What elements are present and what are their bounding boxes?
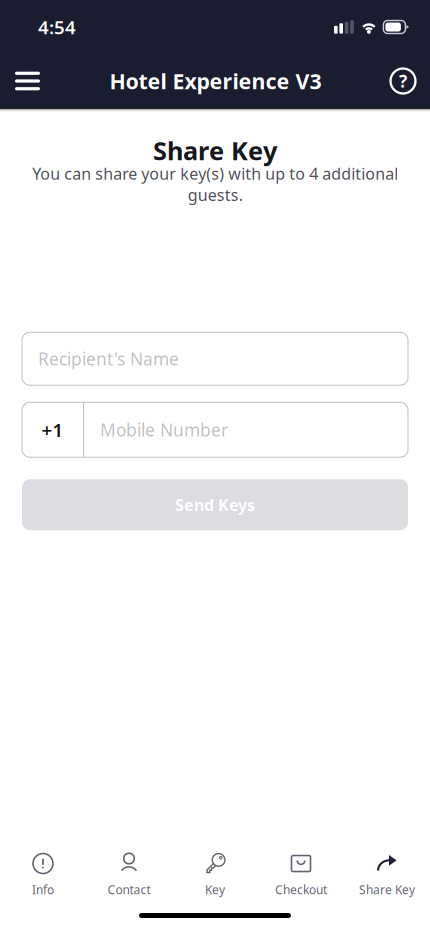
button[interactable]: Info	[0, 839, 86, 905]
staticText: You can share your key(s) with up to 4 a…	[32, 163, 398, 205]
staticText: Share Key	[359, 881, 415, 897]
button[interactable]: Share Key	[344, 839, 430, 905]
button[interactable]: Send Keys	[22, 474, 408, 530]
button[interactable]: Contact	[86, 839, 172, 905]
staticText: Contact	[107, 881, 150, 897]
staticText: Share Key	[153, 134, 277, 167]
staticText: Key	[205, 881, 225, 897]
button[interactable]: Checkout	[258, 839, 344, 905]
staticText: Hotel Experience V3	[109, 67, 321, 95]
staticText: Mobile Number	[100, 418, 228, 441]
button[interactable]: Key	[172, 839, 258, 905]
staticText: 4:54	[38, 15, 76, 39]
staticText: Checkout	[275, 881, 327, 897]
staticText: Send Keys	[175, 494, 255, 515]
button[interactable]: Menu	[0, 54, 55, 108]
staticText: Recipient's Name	[38, 347, 179, 370]
staticText: +1	[41, 417, 63, 442]
staticText: Info	[32, 881, 54, 897]
staticText: ?	[399, 69, 407, 92]
button[interactable]: Help	[376, 54, 430, 108]
